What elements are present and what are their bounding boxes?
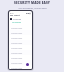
- staticText: Account item: [11, 27, 23, 29]
- button[interactable]: Account item: [9, 60, 32, 65]
- button[interactable]: Account item: [9, 30, 32, 35]
- staticText: Account item: [11, 62, 23, 64]
- staticText: All synced: [12, 21, 22, 24]
- button[interactable]: Account item: [9, 65, 32, 69]
- staticText: SECURITY MADE EASY: [14, 1, 50, 5]
- staticText: Account item: [11, 67, 23, 69]
- button[interactable]: Account item: [9, 35, 32, 40]
- button[interactable]: Account item: [9, 50, 32, 55]
- staticText: Protected: [13, 18, 22, 20]
- staticText: Account item: [11, 47, 23, 49]
- staticText: Account item: [11, 32, 23, 34]
- staticText: 9:41: [10, 12, 14, 14]
- staticText: Account item: [11, 52, 23, 54]
- staticText: Your passwords, one tap away: [18, 7, 47, 10]
- staticText: Account item: [11, 42, 23, 44]
- staticText: Account item: [11, 37, 23, 39]
- button[interactable]: Account item: [9, 55, 32, 60]
- staticText: Account item: [11, 57, 23, 59]
- button[interactable]: Shield: [10, 18, 12, 20]
- button[interactable]: Account item: [9, 40, 32, 45]
- button[interactable]: Account item: [9, 45, 32, 50]
- button[interactable]: Add password: [26, 63, 29, 66]
- button[interactable]: Account item: [9, 25, 32, 30]
- staticText: ▬▬▮: [26, 12, 31, 14]
- staticText: My Vault: [10, 14, 20, 17]
